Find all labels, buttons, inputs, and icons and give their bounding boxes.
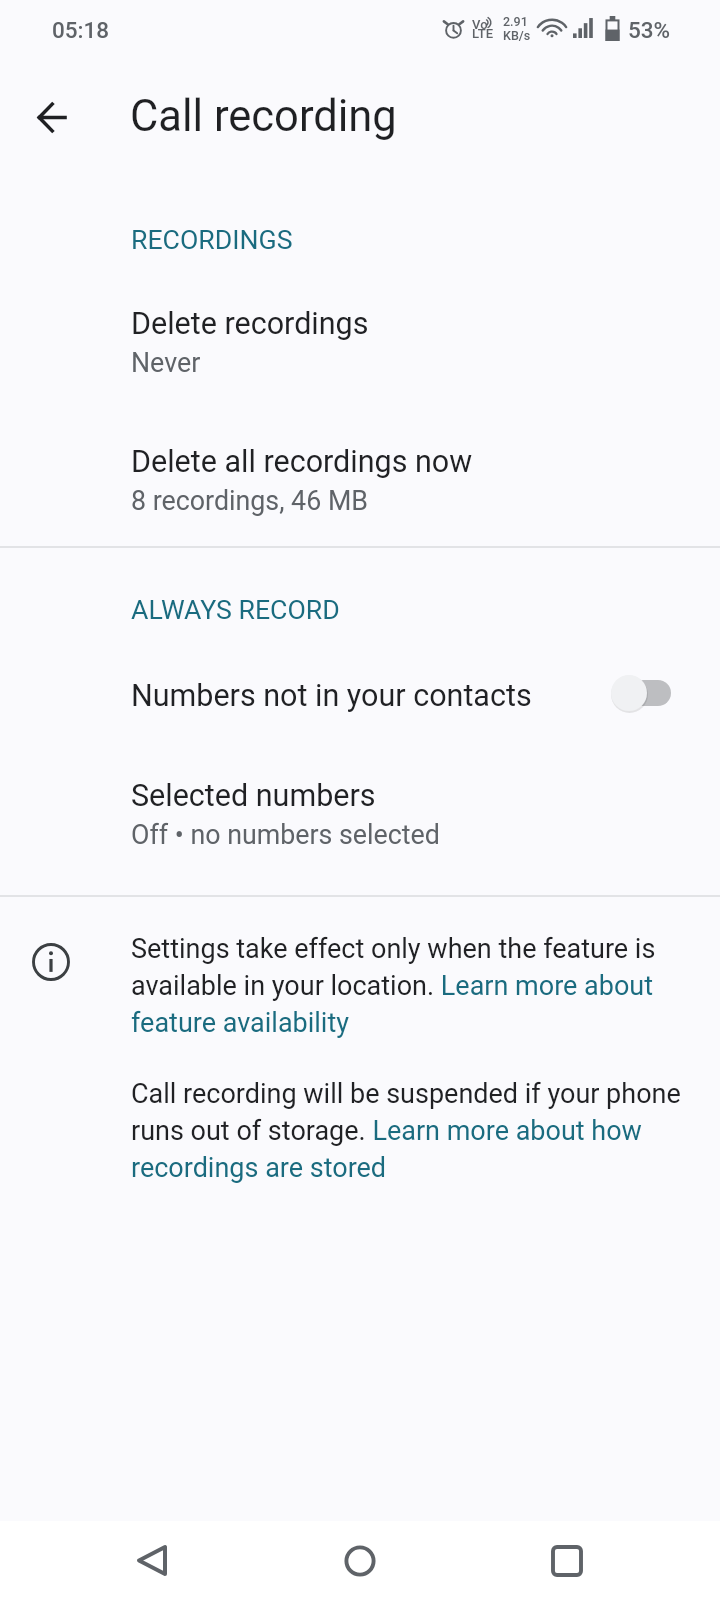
staticText: Settings take effect only when the featu… <box>131 933 693 1039</box>
staticText: 2.91 <box>503 14 528 29</box>
button[interactable]: Home <box>240 1521 480 1600</box>
staticText: KB/s <box>503 28 531 43</box>
button[interactable]: Recent apps <box>480 1521 720 1600</box>
staticText: LTE <box>472 26 493 41</box>
staticText: 05:18 <box>52 17 110 43</box>
button[interactable]: Numbers not in your contacts <box>0 650 720 742</box>
staticText: RECORDINGS <box>131 224 293 255</box>
staticText: 8 recordings, 46 MB <box>131 485 368 516</box>
staticText: ALWAYS RECORD <box>131 594 340 625</box>
button[interactable]: Selected numbers <box>0 752 720 880</box>
button[interactable]: Delete all recordings now <box>0 418 720 546</box>
staticText: Selected numbers <box>131 778 376 814</box>
staticText: Never <box>131 347 201 378</box>
button[interactable]: Delete recordings <box>0 280 720 408</box>
staticText: Numbers not in your contacts <box>131 678 611 714</box>
staticText: Vo <box>472 17 488 32</box>
staticText: Call recording will be suspended if your… <box>131 1078 693 1184</box>
staticText: 53% <box>628 17 671 43</box>
staticText: Delete all recordings now <box>131 444 473 480</box>
staticText: Delete recordings <box>131 306 369 342</box>
staticText: Call recording <box>130 91 397 142</box>
button[interactable]: Navigate up <box>14 79 90 155</box>
staticText: Off • no numbers selected <box>131 819 440 850</box>
button[interactable]: Back <box>0 1521 240 1600</box>
